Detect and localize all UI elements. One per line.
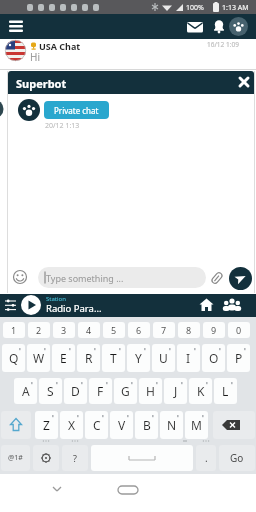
staticText: A — [22, 383, 30, 399]
button[interactable] — [91, 445, 193, 471]
button[interactable]: E — [52, 344, 75, 372]
button[interactable]: 7 — [153, 322, 175, 338]
button[interactable] — [1, 411, 31, 439]
staticText: K — [197, 383, 205, 399]
button[interactable] — [33, 445, 59, 471]
button[interactable] — [236, 74, 252, 90]
button[interactable]: L — [214, 378, 237, 404]
staticText: Radio Para... — [46, 302, 102, 315]
button[interactable]: V — [110, 411, 133, 439]
button[interactable] — [229, 267, 252, 290]
staticText: G — [121, 383, 130, 399]
staticText: B — [143, 417, 151, 433]
button[interactable] — [229, 17, 248, 36]
staticText: Y — [135, 350, 142, 366]
button[interactable]: W — [27, 344, 50, 372]
staticText: . — [205, 451, 208, 465]
button[interactable] — [213, 411, 255, 439]
button[interactable]: Q — [2, 344, 25, 372]
staticText: ? — [73, 452, 77, 464]
staticText: Superbot — [16, 76, 67, 91]
staticText: 1 — [11, 324, 17, 336]
button[interactable] — [199, 298, 214, 312]
button[interactable]: 6 — [128, 322, 150, 338]
button[interactable] — [6, 17, 28, 37]
staticText: 4 — [86, 324, 92, 336]
staticText: Private chat — [54, 105, 99, 116]
button[interactable]: K — [189, 378, 212, 404]
staticText: 8 — [186, 324, 192, 336]
button[interactable]: Go — [219, 445, 255, 471]
button[interactable]: U — [152, 344, 175, 372]
button[interactable]: Y — [127, 344, 150, 372]
button[interactable]: O — [202, 344, 225, 372]
staticText: M — [191, 417, 202, 433]
button[interactable]: 2 — [28, 322, 50, 338]
staticText: I — [186, 350, 191, 366]
button[interactable] — [12, 269, 28, 285]
button[interactable]: 8 — [178, 322, 200, 338]
staticText: U — [159, 350, 168, 366]
staticText: 1:13 AM — [222, 3, 249, 13]
button[interactable]: I — [177, 344, 200, 372]
staticText: D — [71, 383, 80, 399]
button[interactable]: M — [185, 411, 208, 439]
button[interactable]: F — [89, 378, 112, 404]
button[interactable]: A — [14, 378, 37, 404]
staticText: H — [146, 383, 155, 399]
staticText: Station — [46, 295, 66, 303]
button[interactable]: Z — [35, 411, 58, 439]
staticText: S — [47, 383, 54, 399]
button[interactable]: B — [135, 411, 158, 439]
staticText: Go — [230, 451, 244, 465]
staticText: 5 — [111, 324, 117, 336]
staticText: O — [209, 350, 219, 366]
button[interactable] — [212, 19, 226, 35]
button[interactable]: H — [139, 378, 162, 404]
staticText: F — [97, 383, 104, 399]
staticText: Hi — [30, 50, 40, 64]
staticText: E — [60, 350, 67, 366]
staticText: T — [110, 350, 117, 366]
button[interactable] — [21, 295, 41, 315]
staticText: L — [222, 383, 229, 399]
button[interactable]: N — [160, 411, 183, 439]
button[interactable]: D — [64, 378, 87, 404]
button[interactable]: S — [39, 378, 62, 404]
button[interactable] — [209, 269, 225, 287]
button[interactable]: X — [60, 411, 83, 439]
button[interactable] — [222, 297, 242, 313]
staticText: R — [85, 350, 93, 366]
staticText: 20/12 1:13 — [45, 121, 80, 131]
staticText: J — [174, 383, 178, 399]
staticText: Type something ... — [46, 272, 124, 284]
button[interactable]: J — [164, 378, 187, 404]
staticText: 3 — [61, 324, 67, 336]
button[interactable]: P — [227, 344, 250, 372]
button[interactable]: 1 — [3, 322, 25, 338]
button[interactable]: C — [85, 411, 108, 439]
button[interactable]: ? — [62, 445, 88, 471]
staticText: P — [235, 350, 243, 366]
staticText: 2 — [36, 324, 42, 336]
staticText: 9 — [211, 324, 217, 336]
button[interactable]: 0 — [228, 322, 250, 338]
button[interactable]: G — [114, 378, 137, 404]
button[interactable]: @1# — [1, 445, 30, 471]
staticText: N — [167, 417, 177, 433]
staticText: USA Chat — [39, 40, 81, 52]
button[interactable]: 3 — [53, 322, 75, 338]
staticText: 16/12 1:09 — [207, 40, 239, 49]
button[interactable] — [186, 20, 205, 34]
button[interactable]: 5 — [103, 322, 125, 338]
button[interactable]: 4 — [78, 322, 100, 338]
button[interactable]: R — [77, 344, 100, 372]
staticText: 6 — [136, 324, 142, 336]
button[interactable]: Private chat — [44, 101, 109, 119]
staticText: 7 — [161, 324, 167, 336]
staticText: 0 — [236, 324, 242, 336]
button[interactable]: T — [102, 344, 125, 372]
button[interactable]: Type something ... — [38, 267, 206, 288]
button[interactable]: . — [196, 445, 216, 471]
button[interactable]: 9 — [203, 322, 225, 338]
